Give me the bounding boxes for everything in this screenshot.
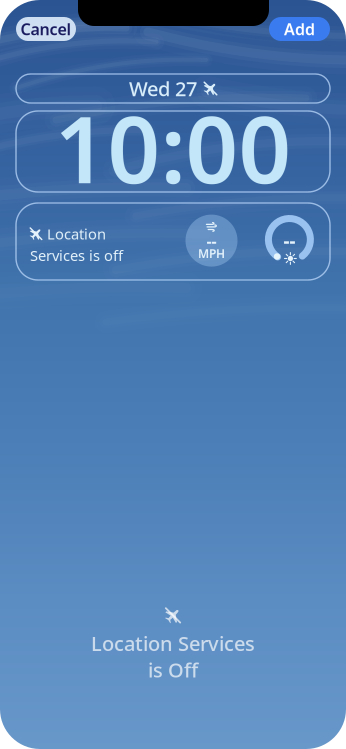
staticText: Location — [47, 224, 106, 243]
staticText: Add — [284, 18, 315, 40]
staticText: Cancel — [20, 18, 71, 40]
staticText: Wed 27 — [129, 75, 197, 102]
staticText: Services is off — [30, 245, 123, 265]
staticText: MPH — [198, 246, 225, 261]
button[interactable]: Cancel — [16, 17, 76, 41]
staticText: Location Services — [91, 630, 255, 656]
staticText: -- — [206, 230, 216, 251]
staticText: -- — [283, 228, 295, 253]
button[interactable]: Add — [269, 17, 330, 41]
staticText: 10:00 — [54, 86, 291, 209]
staticText: is Off — [148, 656, 198, 683]
